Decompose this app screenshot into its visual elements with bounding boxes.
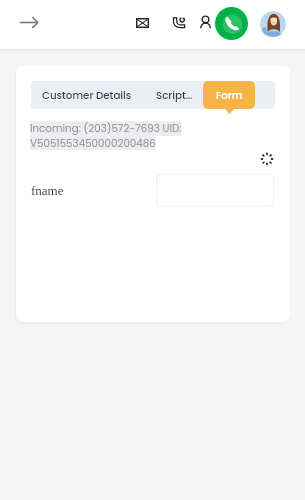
button[interactable]: Back bbox=[14, 10, 44, 35]
staticText: Script… bbox=[156, 88, 193, 102]
button[interactable]: Script… bbox=[148, 81, 201, 109]
staticText: Form bbox=[216, 88, 243, 102]
button[interactable]: Customer Details bbox=[33, 81, 140, 109]
button[interactable]: Call bbox=[215, 7, 248, 40]
button[interactable]: Transfer call bbox=[167, 10, 191, 34]
button[interactable]: Form bbox=[203, 81, 255, 109]
button[interactable]: Contact bbox=[193, 10, 217, 34]
staticText: Incoming: (203)572-7693 UID: V5051553450… bbox=[30, 121, 182, 150]
button[interactable]: Email bbox=[130, 11, 154, 35]
button[interactable]: Profile bbox=[260, 11, 286, 37]
staticText: Customer Details bbox=[42, 88, 132, 102]
button[interactable]: fname input bbox=[156, 174, 274, 207]
staticText: fname bbox=[31, 183, 64, 197]
